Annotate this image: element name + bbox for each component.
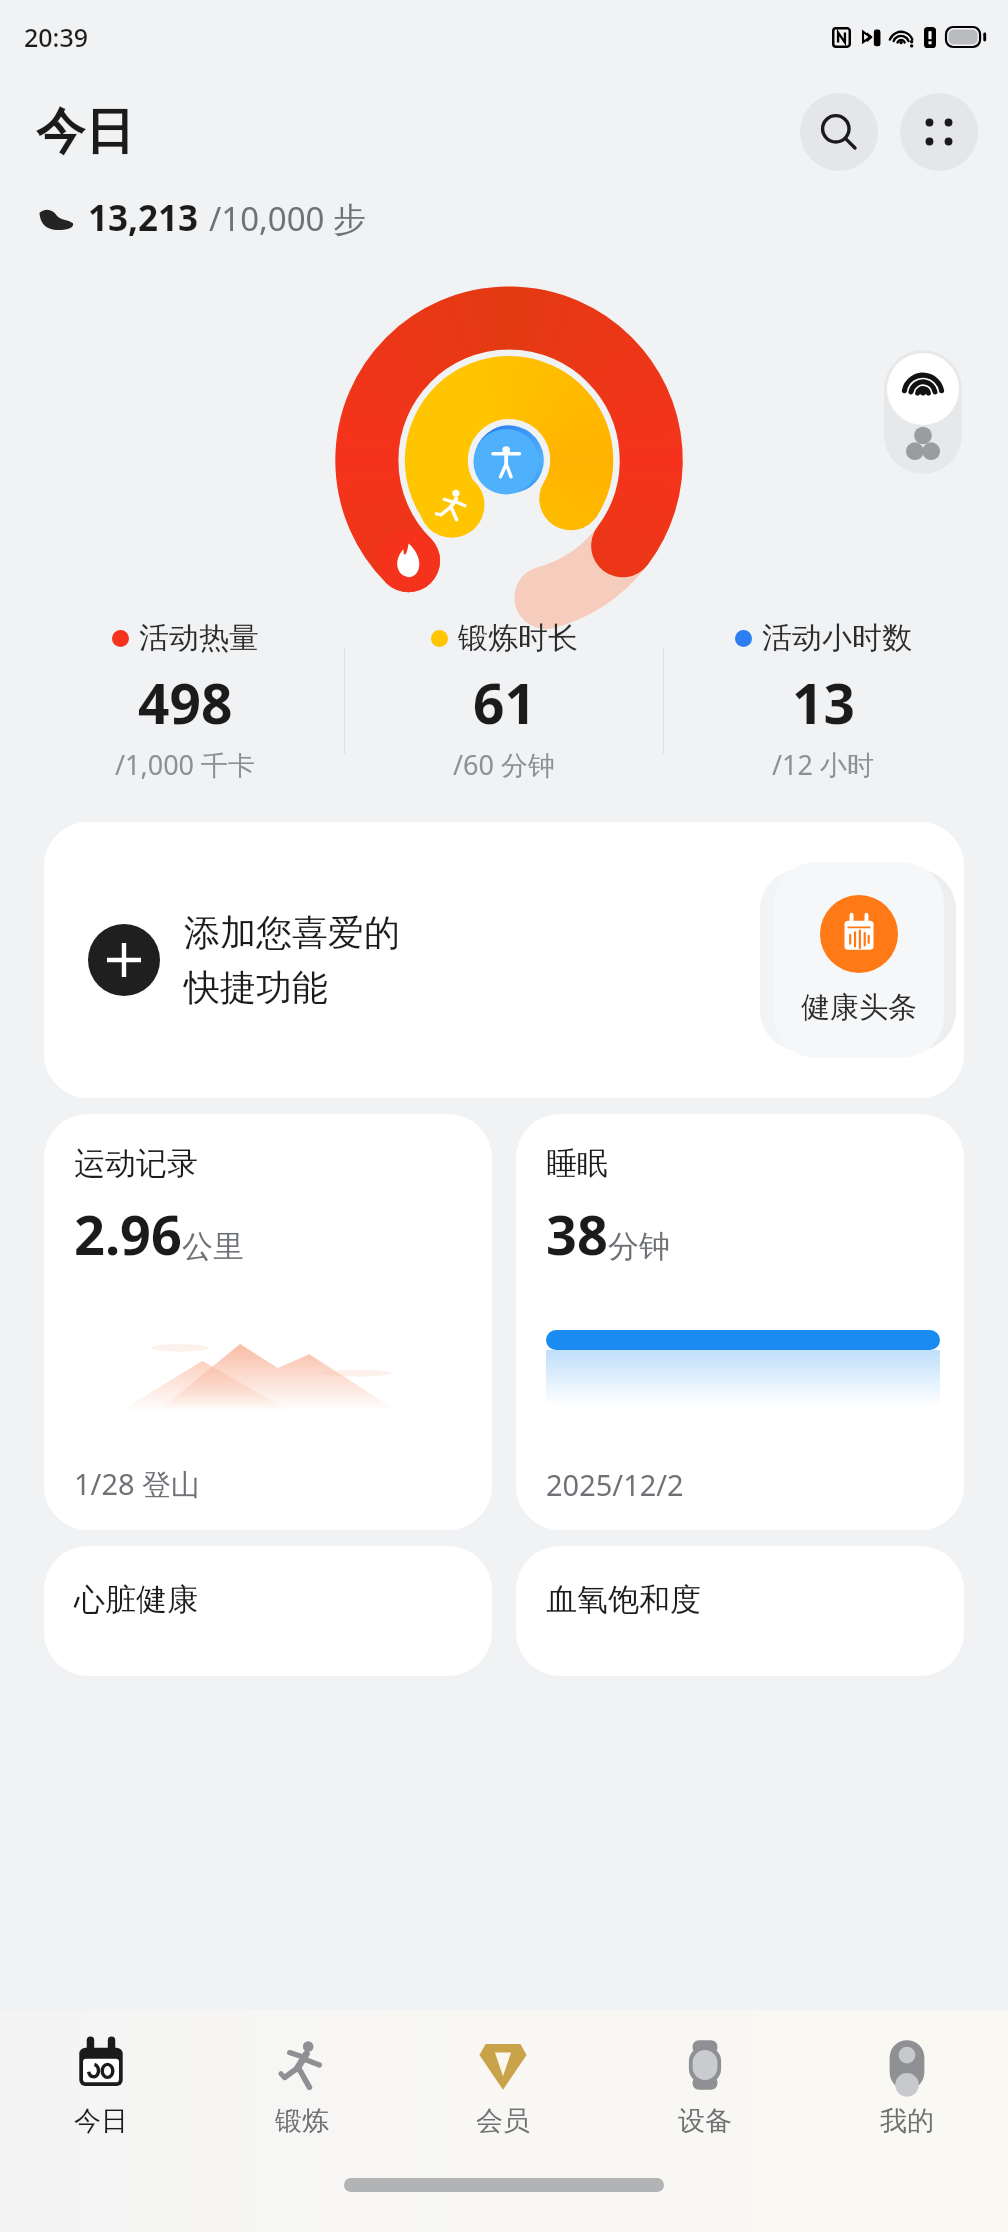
staticText: /10,000 步 bbox=[209, 196, 367, 241]
button[interactable]: 锻炼时长 bbox=[345, 606, 663, 796]
button[interactable]: 添加您喜爱的 bbox=[44, 822, 964, 1098]
button[interactable]: 心脏健康 bbox=[44, 1546, 492, 1676]
staticText: 1/28 登山 bbox=[74, 1464, 201, 1504]
staticText: 心脏健康 bbox=[74, 1580, 198, 1619]
button[interactable]: 活动热量 bbox=[26, 606, 344, 796]
button[interactable]: 设备 bbox=[604, 2010, 806, 2162]
staticText: 498 bbox=[138, 665, 233, 740]
button[interactable]: 健康头条 bbox=[774, 862, 944, 1058]
staticText: /1,000 千卡 bbox=[115, 746, 256, 783]
staticText: 2.96 bbox=[74, 1197, 182, 1271]
staticText: 公里 bbox=[182, 1227, 244, 1266]
button[interactable]: 会员 bbox=[402, 2010, 604, 2162]
button[interactable]: More options bbox=[900, 93, 978, 171]
staticText: 锻炼时长 bbox=[458, 619, 578, 657]
staticText: 睡眠 bbox=[546, 1144, 608, 1183]
staticText: 13 bbox=[792, 665, 855, 740]
staticText: /12 小时 bbox=[772, 746, 874, 783]
staticText: 2025/12/2 bbox=[546, 1465, 684, 1504]
staticText: 活动热量 bbox=[139, 619, 259, 657]
staticText: 61 bbox=[473, 665, 536, 740]
staticText: 今日 bbox=[36, 101, 134, 163]
button[interactable]: 今日 bbox=[0, 2010, 201, 2162]
button[interactable]: 运动记录 bbox=[44, 1114, 492, 1530]
staticText: 运动记录 bbox=[74, 1144, 198, 1183]
button[interactable]: 血氧饱和度 bbox=[516, 1546, 964, 1676]
button[interactable]: 我的 bbox=[806, 2010, 1008, 2162]
staticText: 快捷功能 bbox=[184, 965, 328, 1010]
button[interactable]: 锻炼 bbox=[201, 2010, 402, 2162]
button[interactable]: 13,213 bbox=[0, 190, 1008, 246]
staticText: 20:39 bbox=[24, 20, 89, 54]
staticText: 健康头条 bbox=[801, 989, 917, 1026]
staticText: 设备 bbox=[678, 2104, 732, 2138]
staticText: 血氧饱和度 bbox=[546, 1580, 701, 1619]
staticText: 38 bbox=[546, 1197, 608, 1271]
staticText: 13,213 bbox=[88, 194, 199, 242]
staticText: 添加您喜爱的 bbox=[184, 910, 400, 955]
staticText: 我的 bbox=[880, 2104, 934, 2138]
staticText: 今日 bbox=[74, 2104, 128, 2138]
button[interactable]: 睡眠 bbox=[516, 1114, 964, 1530]
staticText: 活动小时数 bbox=[762, 619, 912, 657]
staticText: /60 分钟 bbox=[453, 746, 555, 783]
button[interactable]: Search bbox=[800, 93, 878, 171]
staticText: 锻炼 bbox=[275, 2104, 329, 2138]
button[interactable]: 活动小时数 bbox=[664, 606, 982, 796]
staticText: 会员 bbox=[476, 2104, 530, 2138]
staticText: 分钟 bbox=[608, 1227, 670, 1266]
button[interactable]: Connected device bbox=[884, 350, 962, 474]
